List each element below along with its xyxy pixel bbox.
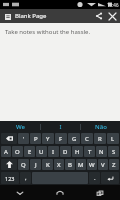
- staticText: R: [98, 135, 102, 143]
- button[interactable]: We: [0, 121, 40, 132]
- staticText: ': [23, 135, 25, 143]
- staticText: I: [59, 123, 62, 131]
- button[interactable]: R: [94, 133, 106, 144]
- staticText: Take notes without the hassle.: [5, 28, 91, 36]
- staticText: K: [46, 161, 50, 169]
- staticText: 123: [5, 175, 15, 182]
- staticText: S: [112, 148, 116, 156]
- staticText: 11:46: [107, 2, 119, 8]
- staticText: L: [111, 135, 115, 143]
- staticText: E: [28, 148, 32, 156]
- staticText: C: [85, 135, 89, 143]
- staticText: J: [35, 161, 37, 169]
- staticText: F: [59, 135, 63, 143]
- button[interactable]: M: [76, 159, 86, 170]
- button[interactable]: P: [30, 133, 41, 144]
- button[interactable]: A: [1, 146, 11, 157]
- button[interactable]: D: [60, 146, 71, 157]
- button[interactable]: U: [36, 146, 47, 157]
- staticText: W: [89, 161, 95, 169]
- button[interactable]: 123: [1, 172, 19, 184]
- button[interactable]: Z: [109, 159, 119, 170]
- button[interactable]: G: [68, 133, 80, 144]
- button[interactable]: Share: [92, 9, 106, 23]
- staticText: Q: [21, 161, 26, 169]
- button[interactable]: H: [72, 146, 83, 157]
- button[interactable]: F: [55, 133, 67, 144]
- button[interactable]: ': [18, 133, 29, 144]
- button[interactable]: Recent apps: [80, 185, 120, 200]
- staticText: I: [52, 148, 55, 156]
- button[interactable]: Não: [81, 121, 120, 132]
- staticText: N: [99, 148, 104, 156]
- button[interactable]: Enter: [101, 172, 119, 184]
- staticText: Blank Page: [15, 12, 92, 20]
- staticText: T: [88, 148, 92, 156]
- button[interactable]: L: [107, 133, 119, 144]
- button[interactable]: B: [65, 159, 75, 170]
- staticText: P: [34, 135, 38, 143]
- staticText: Não: [95, 123, 107, 131]
- button[interactable]: Close: [106, 9, 118, 23]
- staticText: Y: [46, 135, 50, 143]
- staticText: .: [94, 174, 96, 182]
- staticText: O: [15, 148, 20, 156]
- button[interactable]: Backspace: [1, 133, 17, 144]
- button[interactable]: Y: [42, 133, 54, 144]
- button[interactable]: ,: [20, 172, 31, 184]
- staticText: H: [75, 148, 80, 156]
- button[interactable]: Home: [40, 185, 80, 200]
- button[interactable]: O: [12, 146, 23, 157]
- staticText: V: [101, 161, 105, 169]
- button[interactable]: E: [24, 146, 35, 157]
- button[interactable]: Back: [0, 185, 40, 200]
- button[interactable]: Shift: [1, 159, 17, 170]
- button[interactable]: N: [96, 146, 107, 157]
- button[interactable]: C: [81, 133, 93, 144]
- button[interactable]: Blank page icon: [3, 12, 12, 21]
- button[interactable]: S: [108, 146, 119, 157]
- staticText: Z: [112, 161, 116, 169]
- button[interactable]: I: [48, 146, 59, 157]
- staticText: B: [68, 161, 72, 169]
- staticText: D: [63, 148, 68, 156]
- button[interactable]: .: [89, 172, 100, 184]
- button[interactable]: K: [42, 159, 53, 170]
- staticText: G: [72, 135, 77, 143]
- staticText: We: [16, 123, 25, 131]
- staticText: A: [4, 148, 8, 156]
- button[interactable]: Q: [18, 159, 29, 170]
- staticText: M: [78, 161, 84, 169]
- button[interactable]: J: [30, 159, 41, 170]
- button[interactable]: W: [87, 159, 97, 170]
- button[interactable]: T: [84, 146, 95, 157]
- staticText: U: [39, 148, 44, 156]
- button[interactable]: V: [98, 159, 108, 170]
- staticText: X: [57, 161, 61, 169]
- button[interactable]: X: [54, 159, 64, 170]
- staticText: ,: [25, 174, 27, 182]
- button[interactable]: I: [41, 121, 80, 132]
